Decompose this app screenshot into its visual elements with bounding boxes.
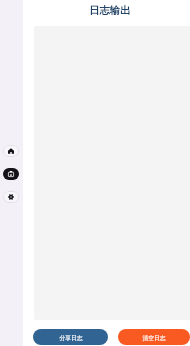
button[interactable]: 清空日志 [118, 329, 190, 345]
staticText: 分享日志 [59, 334, 83, 341]
button[interactable]: 分享日志 [33, 329, 108, 345]
staticText: 清空日志 [142, 334, 166, 341]
staticText: 日志输出 [89, 4, 131, 17]
button[interactable]: Logs [3, 168, 19, 180]
button[interactable]: Settings [3, 191, 19, 203]
button[interactable]: Home [3, 145, 19, 157]
